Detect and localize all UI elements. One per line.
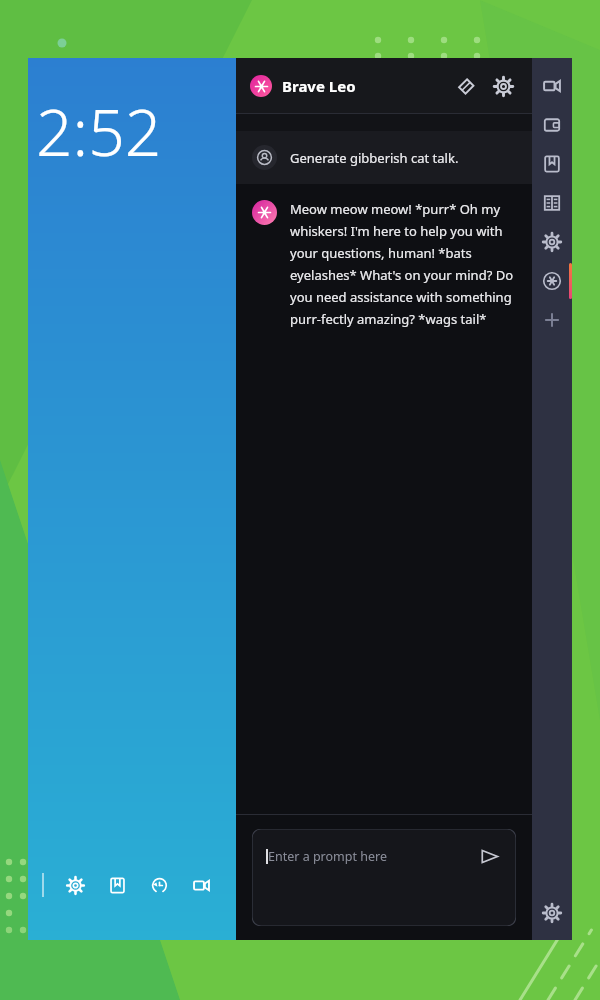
staticText: Enter a prompt here [268,848,387,865]
button[interactable]: Generate gibberish cat talk. [236,131,532,184]
button[interactable]: Reading list [532,183,572,222]
button[interactable]: Enter a prompt here [252,829,516,926]
button[interactable]: Add panel [532,300,572,339]
staticText: Brave Leo [282,76,356,96]
staticText: Generate gibberish cat talk. [290,149,459,167]
button[interactable]: Settings [532,222,572,261]
button[interactable]: Settings [62,872,88,898]
button[interactable]: Video call [188,872,214,898]
staticText: 2:52 [36,88,162,175]
button[interactable]: Leo AI [532,261,572,300]
button[interactable]: Bookmarks [104,872,130,898]
button[interactable]: Video call [532,66,572,105]
button[interactable]: Send prompt [476,843,502,869]
button[interactable]: Sidebar settings [532,893,572,932]
button[interactable]: Leo settings [488,71,518,101]
button[interactable]: Clear conversation [450,71,480,101]
button[interactable]: Meow meow meow! *purr* Oh my whiskers! I… [236,184,532,328]
button[interactable]: Wallet [532,105,572,144]
staticText: Meow meow meow! *purr* Oh my whiskers! I… [290,200,516,328]
button[interactable]: Bookmarks [532,144,572,183]
button[interactable]: History [146,872,172,898]
